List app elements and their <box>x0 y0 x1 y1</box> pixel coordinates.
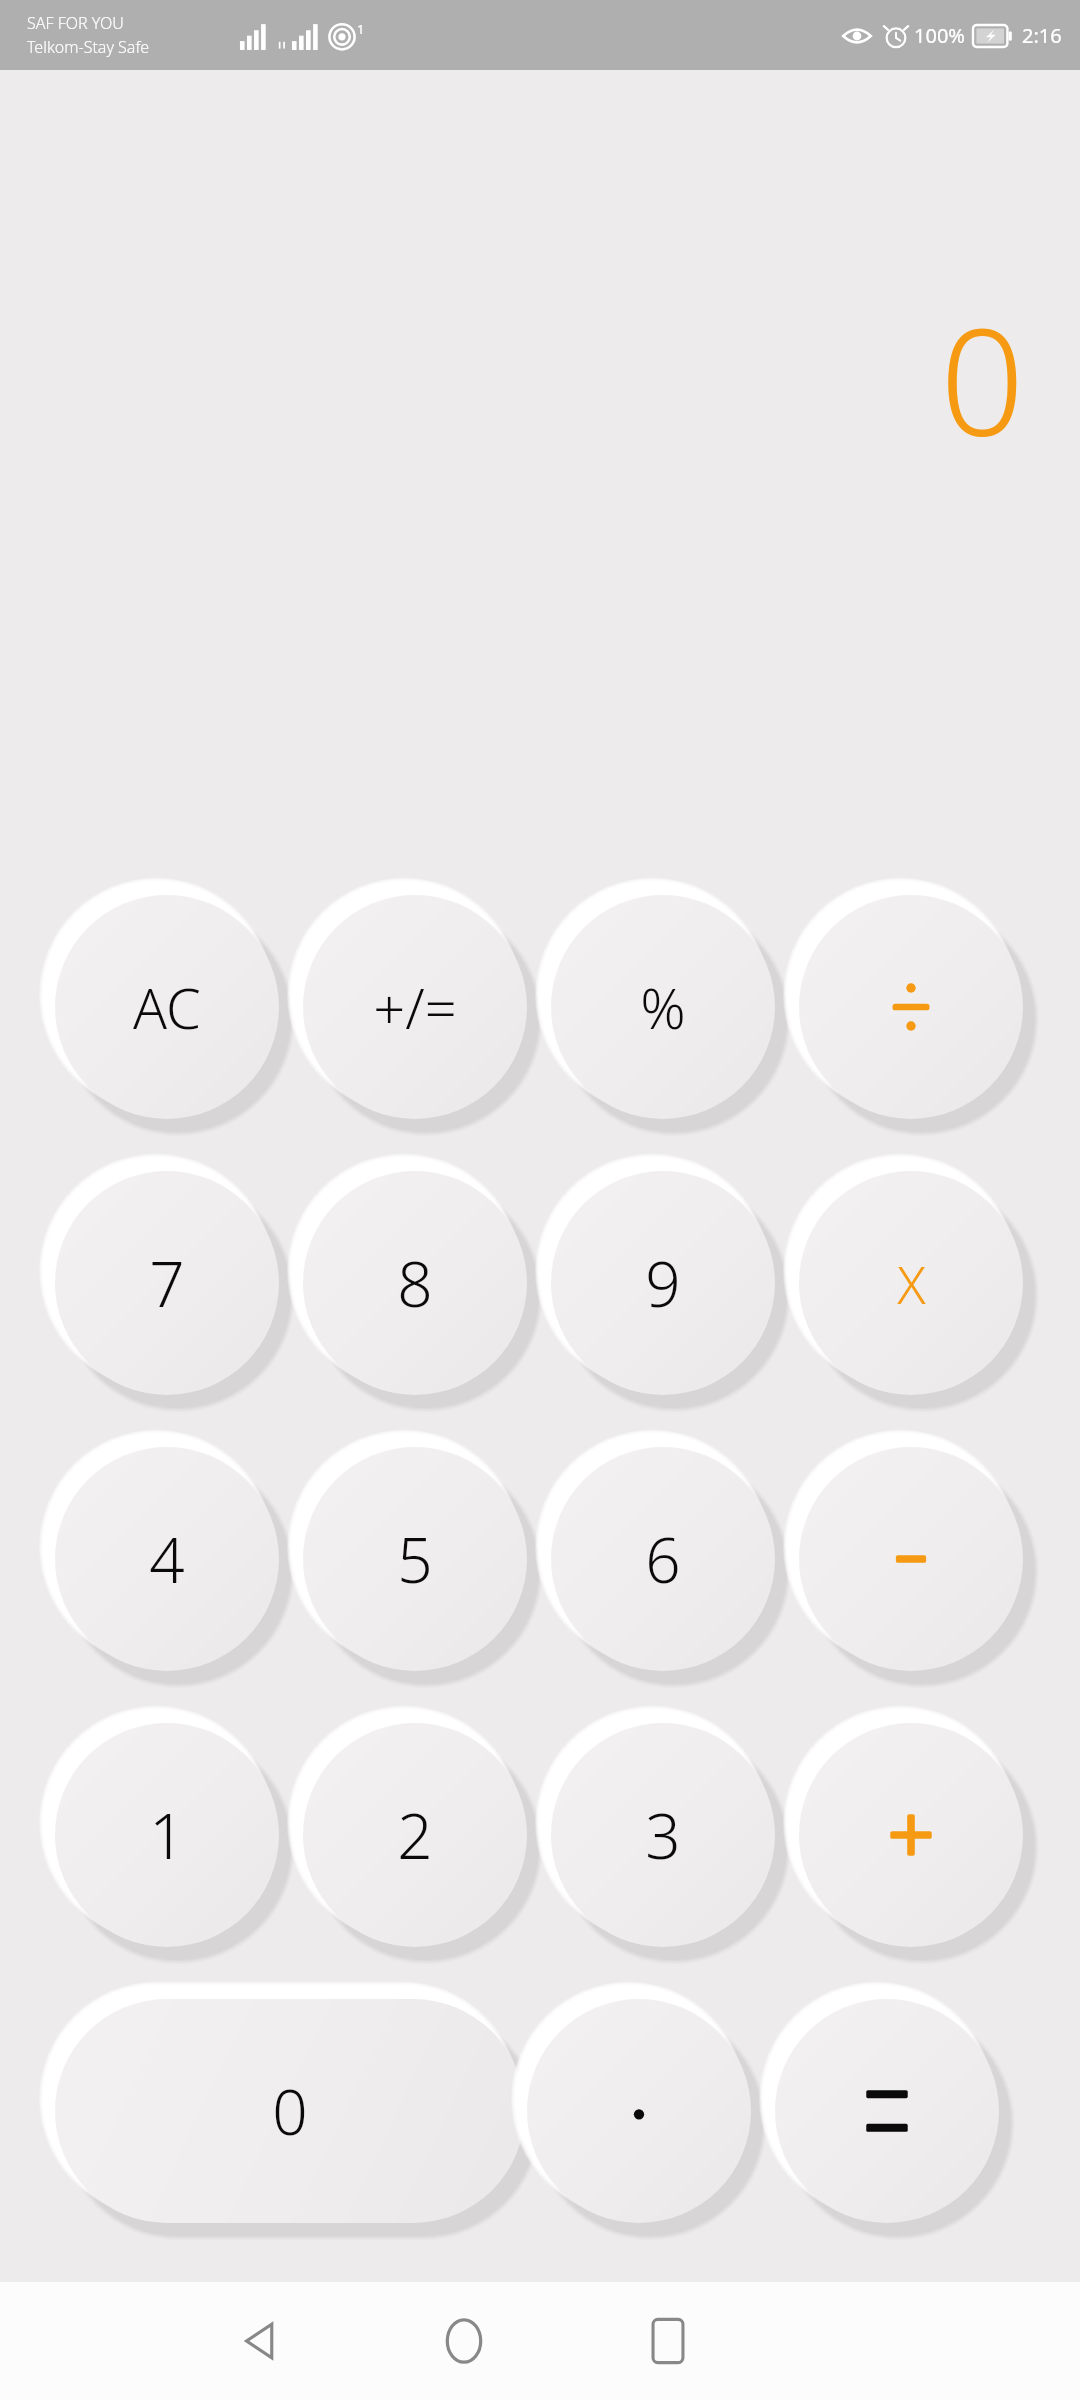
staticText: 7 <box>149 1241 185 1325</box>
staticText: 2 <box>397 1793 433 1877</box>
staticText: 1 <box>357 20 365 38</box>
staticText: 6 <box>645 1517 681 1601</box>
button[interactable]: 7 <box>55 1171 279 1395</box>
staticText: X <box>897 1248 926 1319</box>
button[interactable]: 1 <box>55 1723 279 1947</box>
staticText: SAF FOR YOU <box>27 12 124 34</box>
staticText: % <box>640 969 686 1045</box>
button[interactable]: Recent apps <box>608 2282 728 2400</box>
button[interactable]: Subtract <box>799 1447 1023 1671</box>
button[interactable]: 9 <box>551 1171 775 1395</box>
button[interactable]: 4 <box>55 1447 279 1671</box>
button[interactable]: Percent <box>551 895 775 1119</box>
button[interactable]: 3 <box>551 1723 775 1947</box>
staticText: 2:16 <box>1022 22 1062 49</box>
button[interactable]: Decimal point <box>527 1999 751 2223</box>
staticText: 0 <box>272 2069 308 2153</box>
staticText: 9 <box>645 1241 681 1325</box>
button[interactable]: 8 <box>303 1171 527 1395</box>
staticText: 5 <box>397 1517 433 1601</box>
staticText: 0 <box>940 278 1025 480</box>
staticText: 8 <box>397 1241 433 1325</box>
staticText: 100% <box>914 22 965 49</box>
staticText: Telkom-Stay Safe <box>27 36 150 58</box>
staticText: 4 <box>149 1517 185 1601</box>
button[interactable]: All clear <box>55 895 279 1119</box>
staticText: 3 <box>645 1793 681 1877</box>
staticText: AC <box>133 969 201 1045</box>
button[interactable]: Divide <box>799 895 1023 1119</box>
button[interactable]: 6 <box>551 1447 775 1671</box>
button[interactable]: Back <box>200 2282 320 2400</box>
button[interactable]: 5 <box>303 1447 527 1671</box>
staticText: 1 <box>149 1793 185 1877</box>
button[interactable]: Add <box>799 1723 1023 1947</box>
button[interactable]: Equals <box>775 1999 999 2223</box>
staticText: +/= <box>373 969 457 1045</box>
button[interactable]: Toggle sign <box>303 895 527 1119</box>
button[interactable]: Home <box>404 2282 524 2400</box>
button[interactable]: 2 <box>303 1723 527 1947</box>
button[interactable]: Multiply <box>799 1171 1023 1395</box>
button[interactable]: 0 <box>55 1999 525 2223</box>
